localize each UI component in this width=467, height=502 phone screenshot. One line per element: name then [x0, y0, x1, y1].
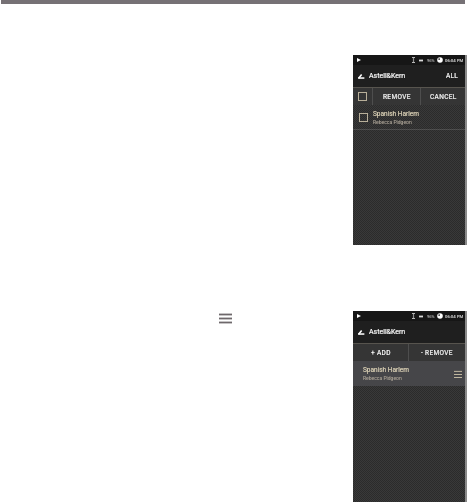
staticText: Rebecca Pidgeon — [363, 375, 402, 381]
button[interactable]: + ADD — [353, 344, 408, 361]
button[interactable]: Spanish Harlem — [353, 361, 465, 386]
button[interactable]: Menu — [217, 311, 235, 325]
staticText: 06:04 PM — [445, 314, 464, 319]
staticText: - REMOVE — [421, 349, 453, 357]
staticText: + ADD — [371, 349, 391, 357]
staticText: REMOVE — [383, 93, 411, 101]
other: Back — [357, 73, 365, 80]
staticText: Astell&Kern — [369, 328, 406, 336]
button[interactable]: Select all — [353, 88, 372, 105]
staticText: ALL — [446, 72, 459, 80]
button[interactable]: CANCEL — [421, 88, 465, 105]
staticText: 06:04 PM — [445, 58, 464, 63]
staticText: Astell&Kern — [369, 72, 406, 80]
other: Reorder — [452, 368, 464, 380]
staticText: Spanish Harlem — [363, 366, 409, 374]
button[interactable]: Spanish Harlem — [353, 105, 465, 129]
other: Back — [357, 329, 365, 336]
button[interactable]: REMOVE — [373, 88, 420, 105]
staticText: Spanish Harlem — [373, 110, 419, 118]
button[interactable]: ALL — [440, 65, 465, 87]
button[interactable]: - REMOVE — [409, 344, 465, 361]
staticText: CANCEL — [430, 93, 457, 101]
staticText: 96% — [427, 314, 435, 319]
staticText: Rebecca Pidgeon — [373, 119, 412, 125]
staticText: 96% — [427, 58, 435, 63]
